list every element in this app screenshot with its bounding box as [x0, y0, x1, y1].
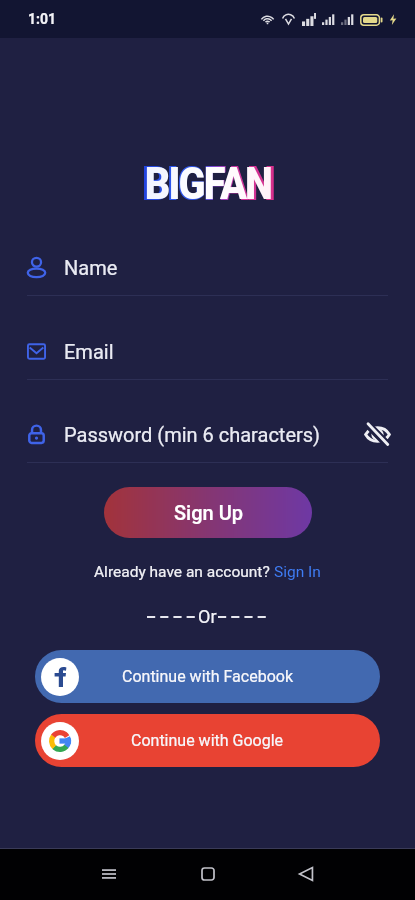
- staticText: Password (min 6 characters): [64, 423, 321, 446]
- staticText: Name: [64, 256, 118, 279]
- staticText: BIGFAN: [145, 157, 271, 203]
- button[interactable]: Sign In: [274, 563, 321, 581]
- button[interactable]: Sign Up: [104, 487, 312, 538]
- staticText: Sign Up: [174, 501, 243, 524]
- button[interactable]: Home: [185, 851, 231, 897]
- button[interactable]: Show password: [363, 420, 391, 448]
- button[interactable]: Name: [0, 239, 415, 295]
- button[interactable]: Continue with Google: [35, 714, 380, 767]
- staticText: Continue with Google: [131, 731, 284, 750]
- button[interactable]: Email: [0, 323, 415, 379]
- staticText: Continue with Facebook: [122, 667, 294, 686]
- staticText: Email: [64, 340, 114, 363]
- staticText: Or: [198, 606, 217, 627]
- staticText: BIGFAN: [142, 156, 274, 204]
- staticText: 1:01: [28, 11, 57, 27]
- button[interactable]: Continue with Facebook: [35, 650, 380, 703]
- button[interactable]: Password (min 6 characters): [0, 406, 415, 462]
- button[interactable]: Back: [283, 851, 329, 897]
- button[interactable]: Recent apps: [86, 851, 132, 897]
- staticText: Already have an account?: [94, 563, 274, 581]
- staticText: Sign In: [274, 563, 321, 581]
